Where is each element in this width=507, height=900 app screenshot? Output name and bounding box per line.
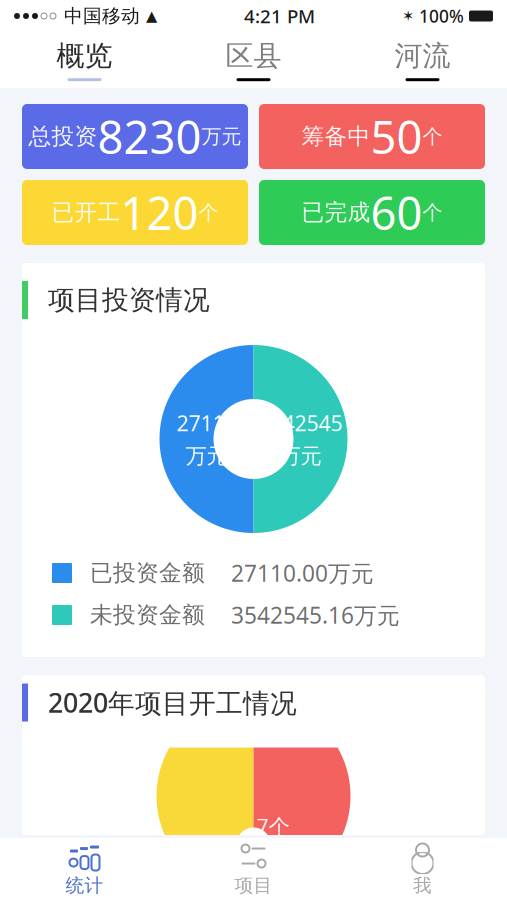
staticText: 项目 xyxy=(234,874,272,897)
button[interactable]: 项目 xyxy=(169,838,338,900)
staticText: 中国移动 xyxy=(64,4,140,27)
staticText: 总投资 xyxy=(28,123,97,150)
staticText: 概览 xyxy=(56,39,112,73)
staticText: 万元 xyxy=(185,443,227,469)
button[interactable]: 筹备中 xyxy=(259,104,485,169)
staticText: 万元 xyxy=(201,124,241,149)
button[interactable]: 统计 xyxy=(0,838,169,900)
staticText: 项目投资情况 xyxy=(48,284,210,316)
button[interactable]: 概览 xyxy=(0,31,169,89)
staticText: 27110.00万元 xyxy=(231,558,374,588)
staticText: 120 xyxy=(120,182,198,243)
button[interactable]: 已完成 xyxy=(259,180,485,245)
staticText: 已投资金额 xyxy=(90,559,205,587)
staticText: 100% xyxy=(419,4,464,27)
staticText: 27110 xyxy=(176,409,236,437)
button[interactable]: 区县 xyxy=(169,31,338,89)
staticText: 8230 xyxy=(97,106,201,167)
staticText: 个 xyxy=(422,200,442,225)
staticText: 60 xyxy=(370,182,422,243)
staticText: 统计 xyxy=(65,874,103,897)
staticText: 4:21 PM xyxy=(244,4,315,28)
staticText: 已开工 xyxy=(51,199,120,226)
staticText: 已完成 xyxy=(301,199,370,226)
button[interactable]: 已开工 xyxy=(22,180,248,245)
staticText: ▲ xyxy=(146,8,157,24)
button[interactable]: 河流 xyxy=(338,31,507,89)
staticText: 2020年项目开工情况 xyxy=(48,685,297,720)
staticText: 50 xyxy=(370,106,422,167)
staticText: 河流 xyxy=(394,39,450,73)
staticText: 我 xyxy=(413,874,432,897)
staticText: 个 xyxy=(422,124,442,149)
staticText: 7个 xyxy=(256,812,289,840)
staticText: 区县 xyxy=(225,39,281,73)
staticText: 3542545.16万元 xyxy=(231,600,400,630)
staticText: 个 xyxy=(198,200,218,225)
staticText: 万元 xyxy=(279,443,321,469)
button[interactable]: 总投资 xyxy=(22,104,248,169)
button[interactable]: 我 xyxy=(338,838,507,900)
staticText: ✶ xyxy=(402,8,414,24)
staticText: 3542545 xyxy=(258,409,342,437)
staticText: 未投资金额 xyxy=(90,601,205,629)
staticText: 筹备中 xyxy=(301,123,370,150)
